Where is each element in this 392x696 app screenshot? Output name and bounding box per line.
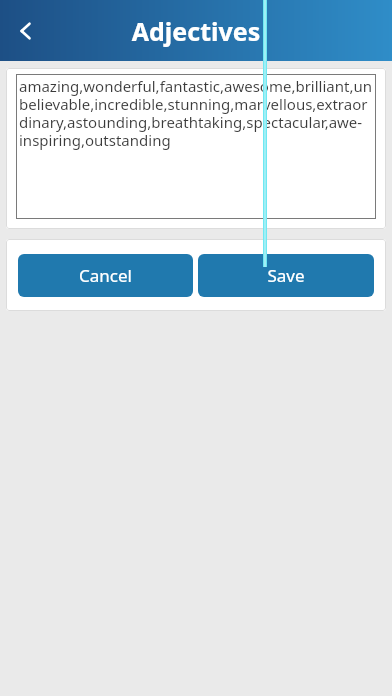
staticText: amazing,wonderful,fantastic,awesome,bril…	[19, 76, 374, 151]
staticText: Save	[267, 264, 305, 287]
button[interactable]: Cancel	[18, 254, 193, 297]
staticText: Adjectives	[0, 14, 392, 48]
button[interactable]: amazing,wonderful,fantastic,awesome,bril…	[16, 74, 376, 219]
staticText: Cancel	[79, 264, 132, 287]
button[interactable]: Back	[2, 7, 50, 55]
button[interactable]: Save	[198, 254, 374, 297]
